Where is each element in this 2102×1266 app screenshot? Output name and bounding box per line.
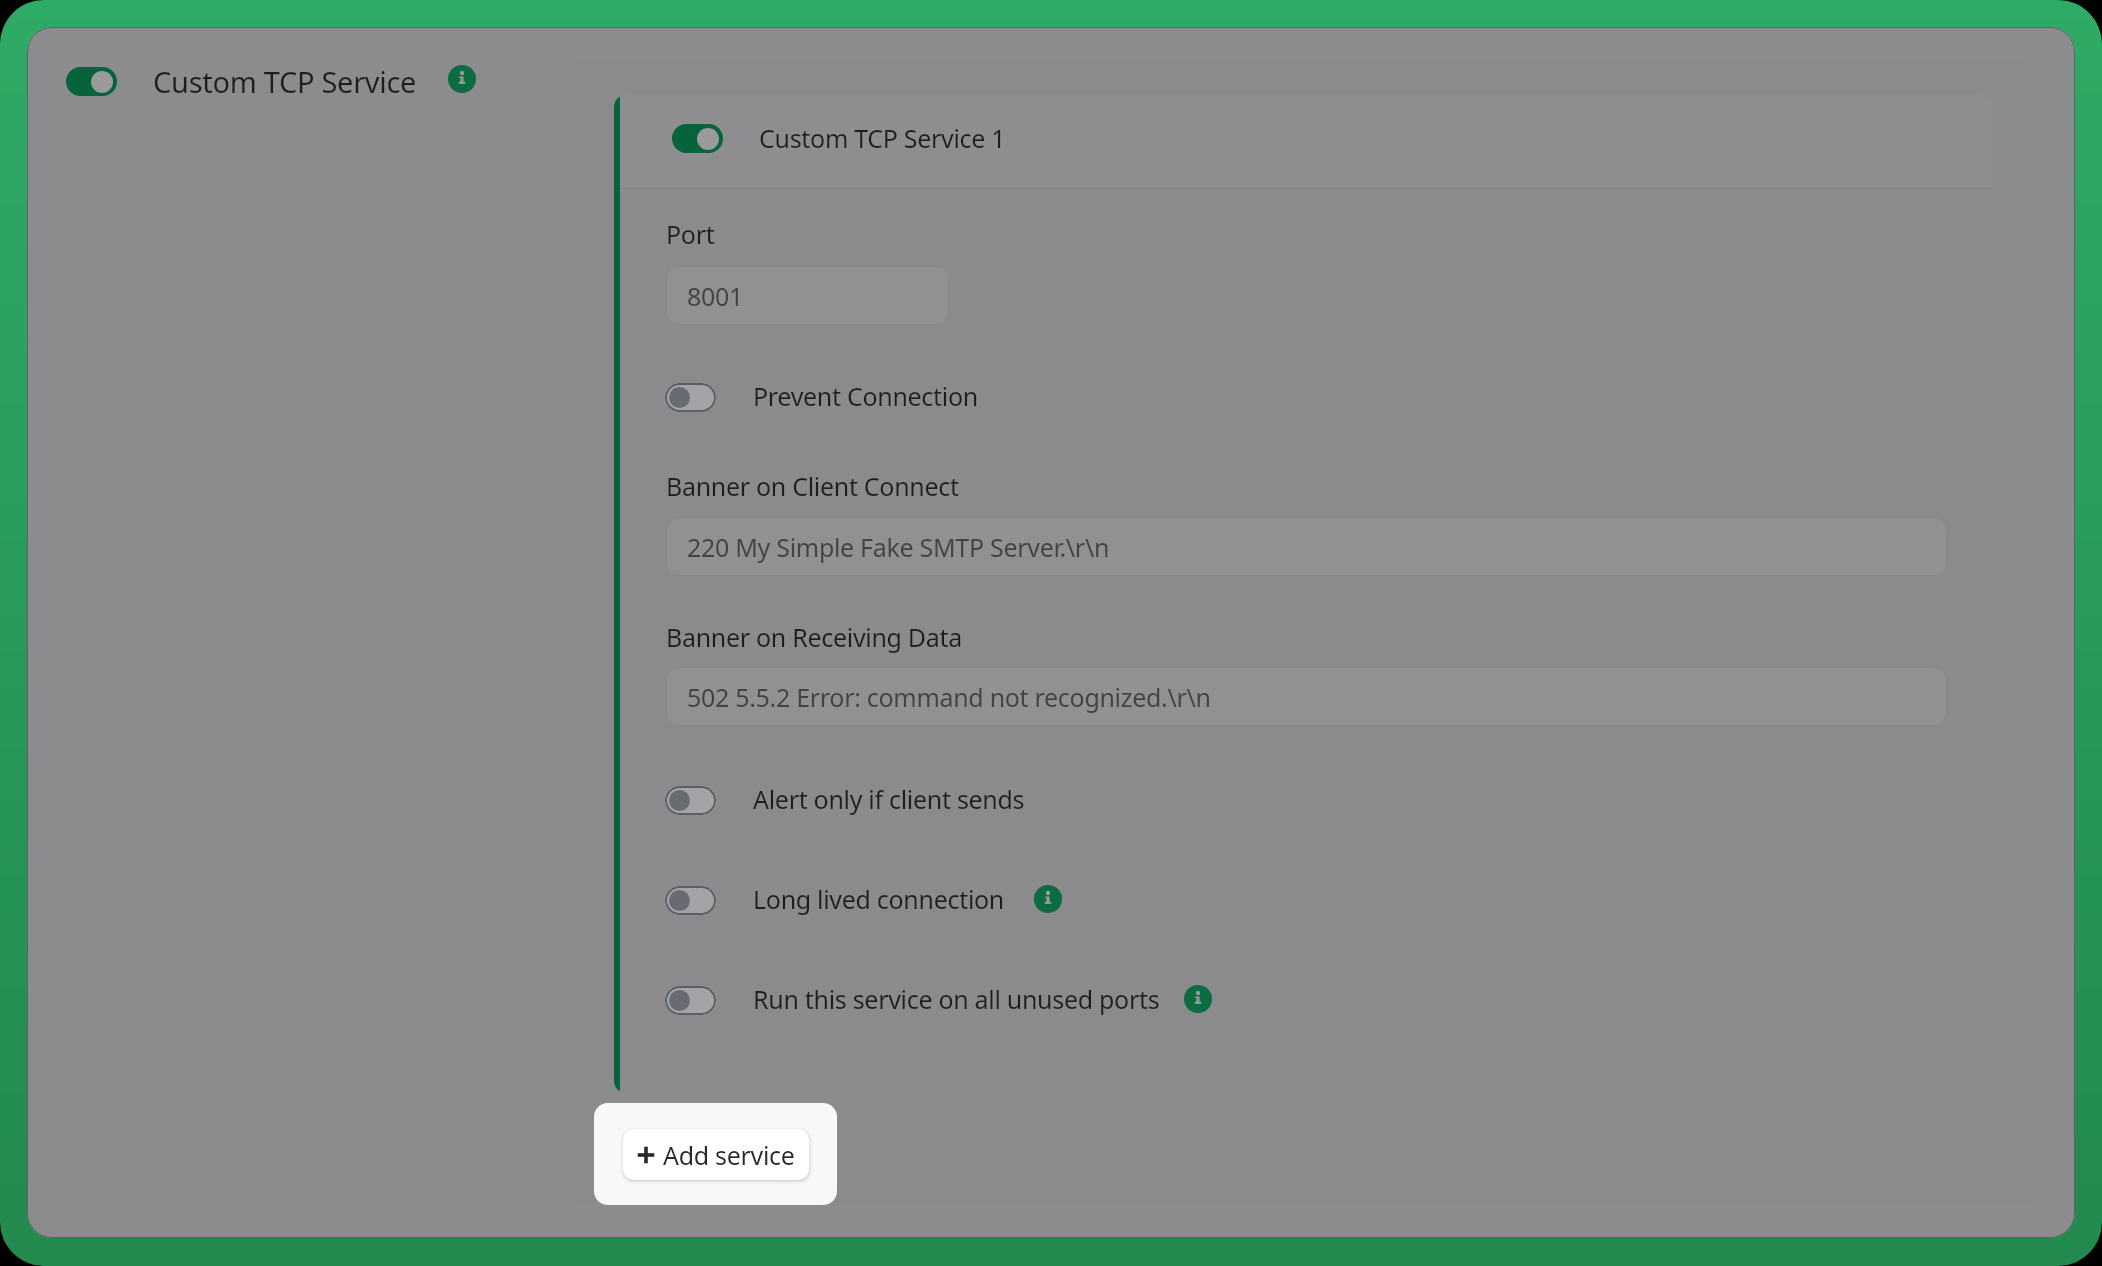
staticText: 502 5.5.2 Error: command not recognized.… [687,680,1211,714]
button[interactable]: More information [1184,985,1212,1013]
button[interactable]: Add service [623,1129,809,1180]
button[interactable]: More information [448,65,476,93]
button[interactable]: Prevent Connection [658,373,985,421]
staticText: Port [666,217,715,251]
button[interactable]: Long lived connection [658,876,1069,924]
button[interactable]: Alert only if client sends [658,776,1032,824]
button[interactable]: Custom TCP Service [59,55,488,108]
staticText: Custom TCP Service [153,62,417,101]
staticText: Custom TCP Service 1 [759,121,1006,155]
staticText: Alert only if client sends [753,782,1025,816]
button[interactable]: Run this service on all unused ports [658,976,1219,1024]
staticText: Add service [663,1138,795,1172]
button[interactable]: Custom TCP Service 1 [665,114,1013,162]
staticText: Long lived connection [753,882,1005,916]
staticText: 8001 [687,279,744,313]
staticText: Banner on Client Connect [666,469,959,503]
button[interactable]: 502 5.5.2 Error: command not recognized.… [666,667,1947,726]
staticText: Banner on Receiving Data [666,620,962,654]
button[interactable]: 220 My Simple Fake SMTP Server.\r\n [666,517,1947,576]
button[interactable]: More information [1034,885,1062,913]
staticText: Run this service on all unused ports [753,982,1160,1016]
staticText: 220 My Simple Fake SMTP Server.\r\n [687,530,1110,564]
button[interactable]: 8001 [666,266,949,325]
staticText: Prevent Connection [753,379,978,413]
